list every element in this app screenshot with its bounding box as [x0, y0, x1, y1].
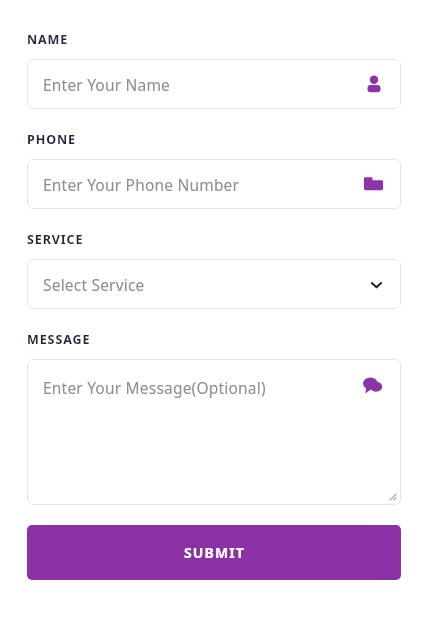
- other: Phone: [364, 175, 383, 194]
- button[interactable]: Enter Your Message(Optional): [27, 359, 401, 505]
- other: Message: [363, 375, 383, 395]
- button[interactable]: Enter Your Phone Number: [27, 159, 401, 209]
- button[interactable]: SUBMIT: [27, 525, 401, 580]
- staticText: MESSAGE: [27, 331, 91, 348]
- other: Name: [365, 75, 383, 93]
- staticText: Select Service: [43, 274, 145, 295]
- staticText: NAME: [27, 31, 69, 48]
- button[interactable]: Select Service: [27, 259, 401, 309]
- staticText: Enter Your Phone Number: [43, 174, 240, 195]
- staticText: Enter Your Message(Optional): [43, 377, 266, 398]
- staticText: Enter Your Name: [43, 74, 171, 95]
- staticText: PHONE: [27, 131, 76, 148]
- staticText: SERVICE: [27, 231, 84, 248]
- staticText: SUBMIT: [184, 543, 245, 562]
- other: Open service list: [370, 278, 383, 291]
- button[interactable]: Enter Your Name: [27, 59, 401, 109]
